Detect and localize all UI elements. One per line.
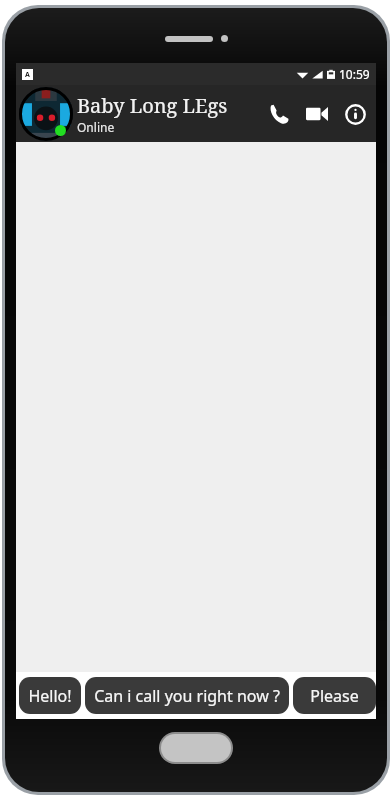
staticText: Please wh [302,685,367,707]
staticText: Online [77,119,115,135]
button[interactable]: Call [260,95,298,133]
button[interactable]: Please wh [293,677,376,714]
button[interactable]: Contact photo [19,87,73,141]
staticText: Hello! [28,685,72,707]
button[interactable]: Info [336,95,374,133]
button[interactable]: Hello! [19,677,81,714]
button[interactable]: Home [159,732,233,764]
staticText: Can i call you right now ? [94,685,280,707]
staticText: Baby Long LEgs [77,92,228,119]
staticText: A [25,70,30,80]
staticText: 10:59 [339,66,370,82]
button[interactable]: Video call [298,95,336,133]
button[interactable]: Can i call you right now ? [85,677,289,714]
